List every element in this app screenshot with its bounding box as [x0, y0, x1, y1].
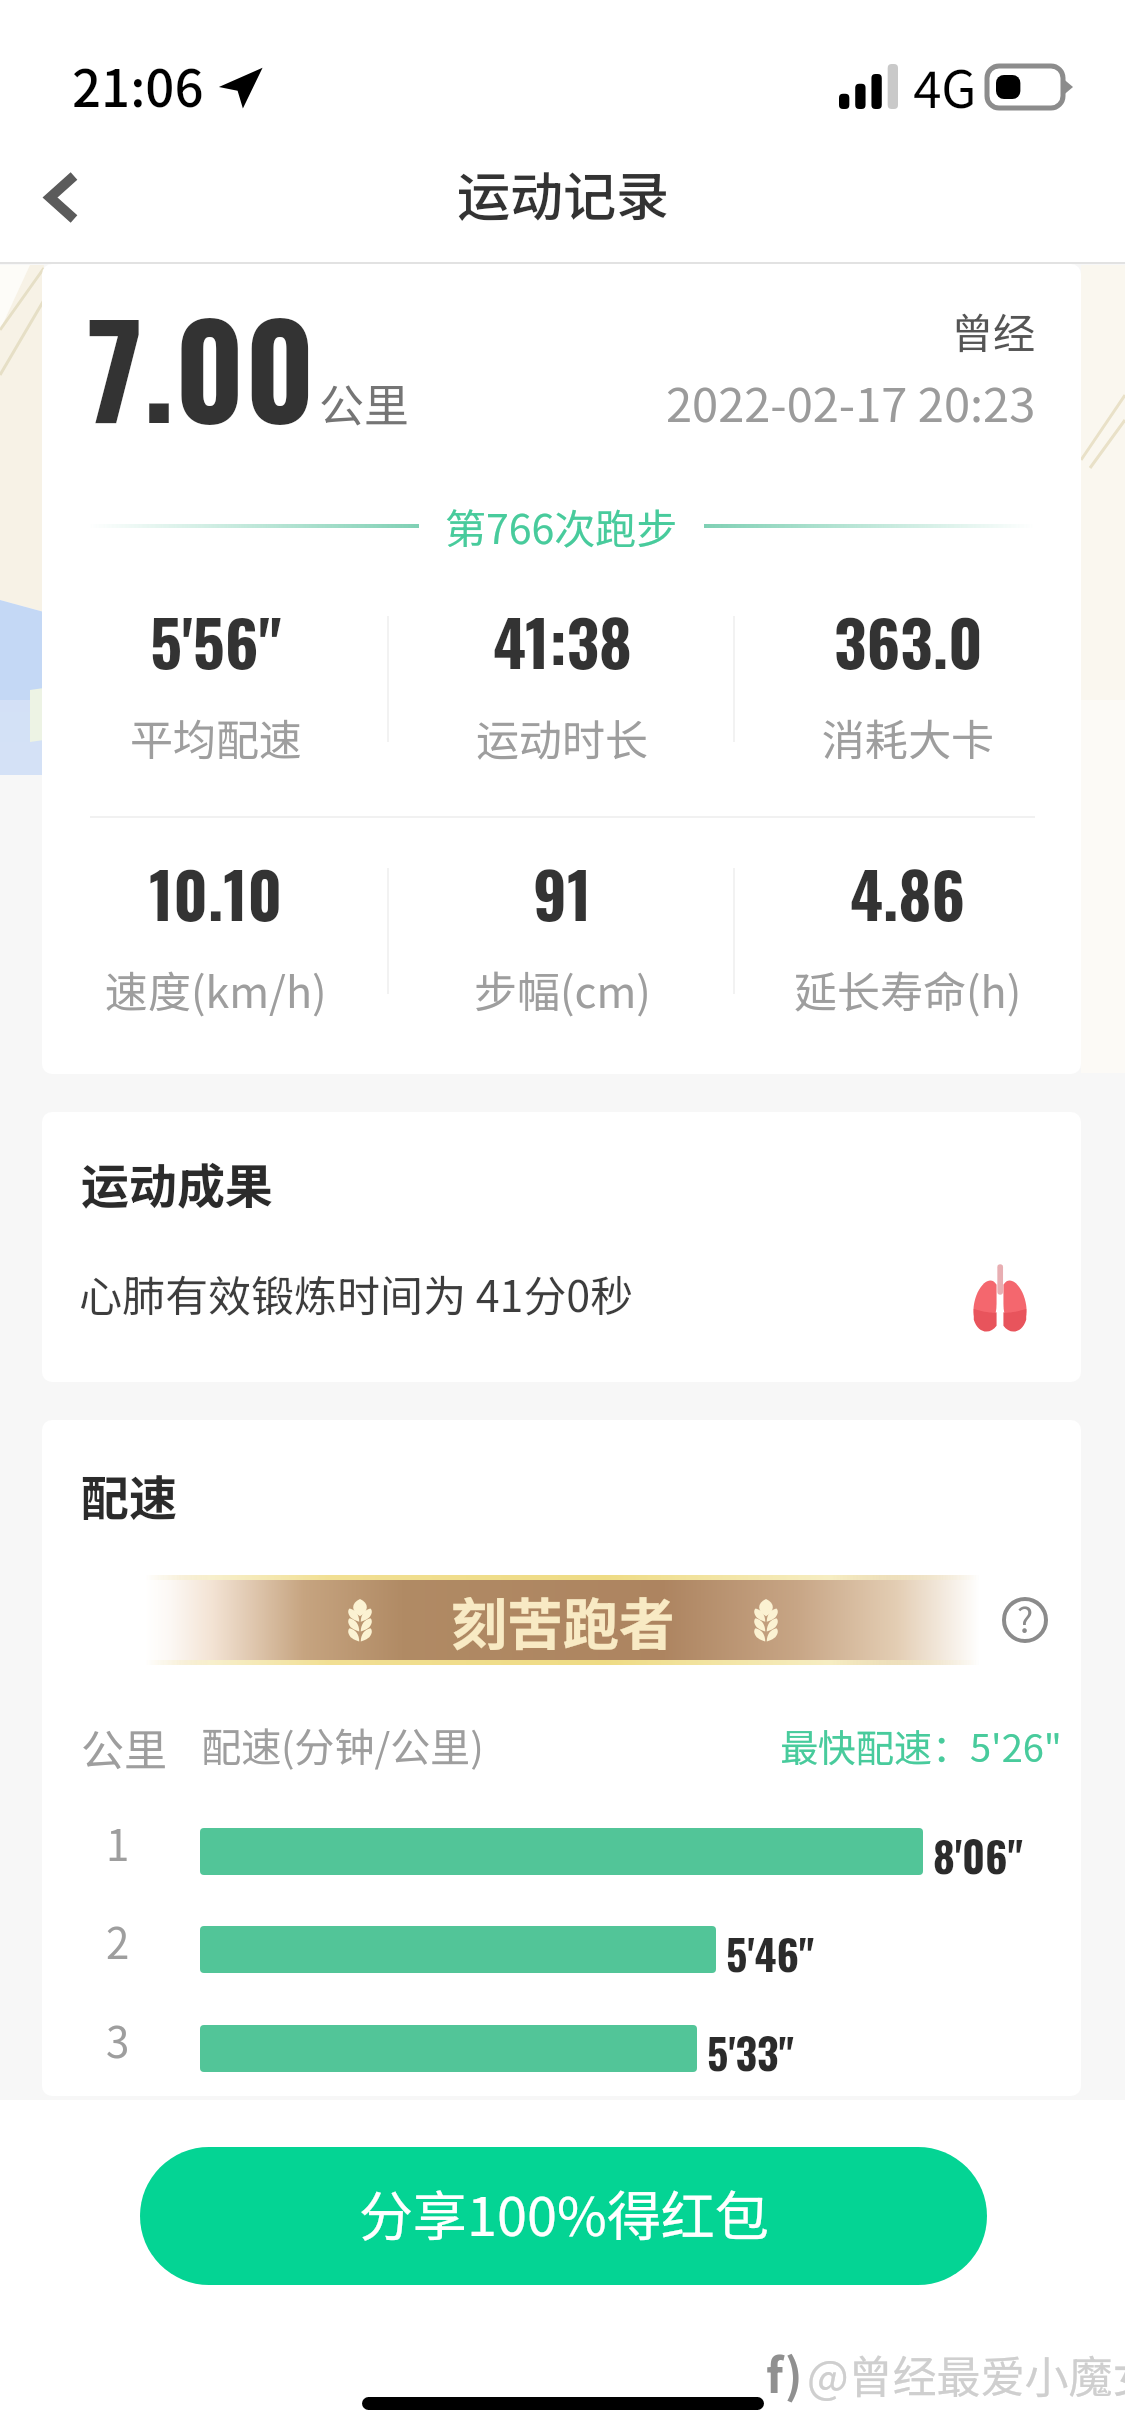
staticText: f): [766, 2340, 803, 2407]
staticText: 配速: [81, 1460, 178, 1530]
staticText: 消耗大卡: [822, 706, 994, 768]
staticText: 平均配速: [130, 706, 302, 768]
button[interactable]: Help: [983, 1578, 1067, 1662]
staticText: 5'33": [707, 2021, 794, 2083]
staticText: 41:38: [493, 594, 632, 687]
staticText: 心肺有效锻炼时间为 41分0秒: [79, 1262, 634, 1324]
button[interactable]: 7.00: [42, 264, 1081, 1074]
staticText: 91: [533, 846, 592, 939]
button[interactable]: Back: [14, 151, 110, 243]
staticText: 运动时长: [476, 706, 648, 768]
staticText: 2022-02-17 20:23: [666, 367, 1036, 435]
staticText: 步幅(cm): [474, 958, 651, 1020]
staticText: 4G: [913, 49, 977, 123]
staticText: 最快配速：5'26": [780, 1718, 1062, 1773]
staticText: 1: [106, 1812, 130, 1873]
staticText: 5'56": [150, 594, 282, 687]
staticText: 10.10: [149, 846, 283, 939]
staticText: 速度(km/h): [105, 958, 327, 1020]
staticText: 3: [106, 2009, 130, 2070]
staticText: 分享100%得红包: [359, 2173, 769, 2251]
staticText: 刻苦跑者: [451, 1580, 675, 1661]
staticText: 第766次跑步: [445, 496, 678, 555]
button[interactable]: 运动成果: [42, 1112, 1081, 1382]
staticText: 运动成果: [81, 1148, 274, 1218]
staticText: 延长寿命(h): [794, 958, 1022, 1020]
staticText: 配速(分钟/公里): [201, 1716, 484, 1774]
staticText: 2: [106, 1910, 130, 1971]
staticText: 运动记录: [457, 155, 669, 232]
staticText: @曾经最爱小魔女: [807, 2342, 1125, 2406]
staticText: ?: [1017, 1594, 1034, 1643]
staticText: 21:06: [72, 48, 204, 122]
staticText: 公里: [81, 1716, 167, 1778]
staticText: 5'46": [726, 1922, 815, 1984]
button[interactable]: 分享100%得红包: [140, 2147, 987, 2285]
staticText: 363.0: [834, 594, 983, 687]
staticText: 曾经: [951, 300, 1036, 361]
staticText: 8'06": [933, 1824, 1023, 1886]
staticText: 7.00: [87, 270, 316, 460]
staticText: 公里: [319, 370, 410, 435]
staticText: 4.86: [850, 846, 966, 939]
